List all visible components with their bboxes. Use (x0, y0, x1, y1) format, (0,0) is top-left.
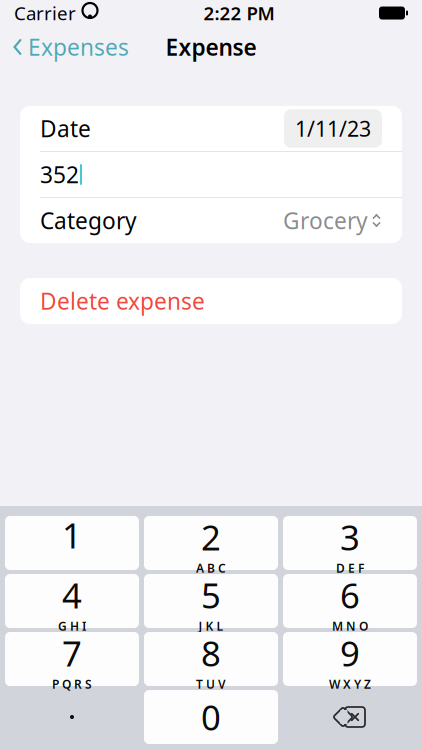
staticText: 352 (40, 159, 79, 189)
staticText: Expense (165, 32, 256, 62)
staticText: T U V (196, 676, 226, 692)
staticText: D E F (336, 560, 364, 576)
staticText: 1/11/23 (295, 114, 371, 143)
staticText: 9 (340, 630, 360, 676)
button[interactable]: 3 (283, 516, 417, 570)
staticText: 6 (340, 572, 360, 618)
button[interactable]: 5 (144, 574, 278, 628)
staticText: Date (40, 113, 91, 143)
button[interactable]: 4 (5, 574, 139, 628)
staticText: Delete expense (40, 286, 205, 316)
staticText: 5 (201, 572, 221, 618)
staticText: 2 (201, 514, 221, 560)
button[interactable]: Delete expense (20, 278, 402, 324)
staticText: Expenses (28, 32, 129, 62)
button[interactable]: Delete (283, 690, 417, 744)
staticText: 8 (201, 630, 221, 676)
staticText: G H I (58, 618, 86, 634)
staticText: 4 (62, 572, 82, 618)
button[interactable]: 1 (5, 516, 139, 570)
staticText: P Q R S (52, 676, 92, 692)
staticText: 2:22 PM (203, 1, 274, 25)
button[interactable]: 7 (5, 632, 139, 686)
staticText: 7 (62, 630, 82, 676)
button[interactable]: Decimal point (5, 690, 139, 744)
staticText: Carrier (14, 1, 76, 25)
staticText: Grocery (283, 205, 368, 235)
staticText: Category (40, 205, 137, 235)
button[interactable]: 2 (144, 516, 278, 570)
staticText: M N O (332, 618, 368, 634)
button[interactable]: 1/11/23 (284, 109, 382, 148)
button[interactable]: 8 (144, 632, 278, 686)
staticText: W X Y Z (329, 676, 371, 692)
staticText: A B C (196, 560, 226, 576)
button[interactable]: 0 (144, 690, 278, 744)
button[interactable]: Category (20, 198, 402, 243)
staticText: 0 (201, 694, 221, 740)
staticText: 3 (340, 514, 360, 560)
button[interactable]: 9 (283, 632, 417, 686)
button[interactable]: Expenses (0, 26, 141, 68)
button[interactable]: 6 (283, 574, 417, 628)
staticText: 1 (62, 512, 82, 558)
staticText: J K L (198, 618, 223, 634)
